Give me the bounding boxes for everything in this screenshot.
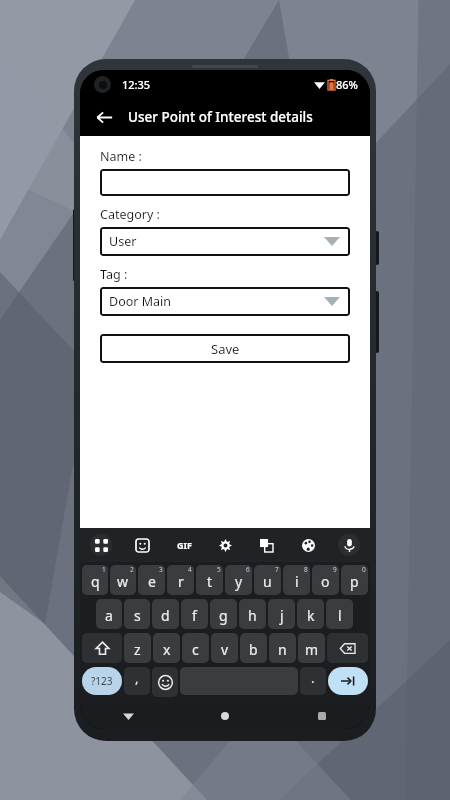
button[interactable]: Theme <box>297 534 319 556</box>
button[interactable]: u <box>254 565 281 595</box>
button[interactable]: Back <box>80 703 176 729</box>
staticText: g <box>219 606 228 625</box>
staticText: User Point of Interest details <box>128 108 313 126</box>
staticText: 86% <box>336 77 358 92</box>
staticText: p <box>350 572 359 591</box>
staticText: i <box>295 572 299 591</box>
staticText: w <box>117 572 129 591</box>
button[interactable]: i <box>283 565 310 595</box>
staticText: r <box>178 572 184 591</box>
button[interactable]: , <box>124 667 150 695</box>
button[interactable]: l <box>326 599 353 629</box>
staticText: x <box>163 640 171 659</box>
button[interactable]: c <box>182 633 209 663</box>
button[interactable]: Translate <box>255 534 277 556</box>
staticText: y <box>235 572 243 591</box>
button[interactable]: GIF <box>173 534 195 556</box>
button[interactable]: p <box>341 565 368 595</box>
staticText: , <box>135 669 139 687</box>
button[interactable]: Stickers <box>131 534 153 556</box>
staticText: n <box>278 640 287 659</box>
button[interactable]: j <box>268 599 295 629</box>
staticText: 12:35 <box>122 77 151 92</box>
button[interactable]: Shift <box>82 633 122 663</box>
staticText: e <box>148 572 156 591</box>
button[interactable]: ?123 <box>82 667 122 695</box>
button[interactable]: Clipboard <box>90 534 112 556</box>
staticText: z <box>134 640 141 659</box>
button[interactable]: Door Main <box>100 287 350 316</box>
staticText: 6 <box>246 565 250 574</box>
staticText: h <box>248 606 257 625</box>
button[interactable]: Voice input <box>338 534 360 556</box>
staticText: User <box>109 233 137 250</box>
staticText: l <box>338 606 342 625</box>
button[interactable]: x <box>153 633 180 663</box>
staticText: c <box>192 640 199 659</box>
staticText: 5 <box>217 565 221 574</box>
staticText: 7 <box>275 565 279 574</box>
staticText: 3 <box>159 565 163 574</box>
button[interactable]: y <box>225 565 252 595</box>
button[interactable]: k <box>297 599 324 629</box>
button[interactable]: s <box>124 599 150 629</box>
button[interactable]: Save <box>100 334 350 363</box>
staticText: ?123 <box>91 674 113 688</box>
staticText: Name : <box>100 148 142 165</box>
staticText: Category : <box>100 206 160 223</box>
staticText: 4 <box>188 565 192 574</box>
staticText: t <box>207 572 213 591</box>
button[interactable]: f <box>181 599 208 629</box>
button[interactable]: m <box>298 633 325 663</box>
staticText: j <box>280 606 284 625</box>
staticText: v <box>221 640 229 659</box>
staticText: Tag : <box>100 266 128 283</box>
button[interactable]: r <box>167 565 194 595</box>
button[interactable]: Emoji <box>152 667 178 697</box>
staticText: u <box>263 572 272 591</box>
staticText: 8 <box>304 565 308 574</box>
staticText: 9 <box>333 565 337 574</box>
staticText: b <box>249 640 258 659</box>
button[interactable]: Back <box>88 101 120 133</box>
staticText: s <box>134 606 141 625</box>
button[interactable]: n <box>269 633 296 663</box>
staticText: Door Main <box>109 293 171 310</box>
staticText: Save <box>211 340 240 358</box>
staticText: . <box>311 669 315 687</box>
button[interactable]: Recents <box>273 703 370 729</box>
button[interactable]: b <box>240 633 267 663</box>
button[interactable]: User <box>100 227 350 256</box>
staticText: k <box>307 606 315 625</box>
staticText: d <box>161 606 170 625</box>
button[interactable]: . <box>300 667 326 695</box>
button[interactable]: o <box>312 565 339 595</box>
button[interactable]: e <box>138 565 165 595</box>
button[interactable]: h <box>239 599 266 629</box>
button[interactable]: q <box>82 565 108 595</box>
button[interactable]: v <box>211 633 238 663</box>
staticText: 1 <box>102 565 106 574</box>
button[interactable]: w <box>110 565 136 595</box>
button[interactable]: t <box>196 565 223 595</box>
staticText: a <box>105 606 113 625</box>
staticText: 0 <box>362 565 366 574</box>
button[interactable]: Backspace <box>327 633 368 663</box>
button[interactable]: Enter <box>328 667 368 695</box>
button[interactable]: Settings <box>214 534 236 556</box>
staticText: f <box>192 606 197 625</box>
button[interactable]: z <box>124 633 151 663</box>
staticText: 2 <box>130 565 134 574</box>
button[interactable] <box>100 169 350 196</box>
staticText: m <box>305 640 319 659</box>
button[interactable]: Home <box>176 703 273 729</box>
staticText: GIF <box>177 539 192 551</box>
staticText: q <box>91 572 100 591</box>
button[interactable]: d <box>152 599 179 629</box>
button[interactable]: g <box>210 599 237 629</box>
staticText: o <box>321 572 330 591</box>
button[interactable]: a <box>96 599 122 629</box>
